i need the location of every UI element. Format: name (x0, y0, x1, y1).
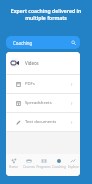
other: Explore (70, 158, 76, 164)
other: Home (11, 158, 17, 164)
button[interactable]: Coaching (51, 154, 66, 176)
button[interactable]: Programs (36, 154, 51, 176)
staticText: Coaching (13, 40, 33, 46)
staticText: Coaching (52, 165, 66, 169)
button[interactable]: PDFs (6, 75, 80, 93)
button[interactable]: Explore (66, 154, 80, 176)
other: Search (71, 40, 76, 45)
staticText: Videos (25, 60, 39, 66)
other: Programs (41, 158, 47, 164)
staticText: PDFs (25, 81, 35, 87)
button[interactable]: Coaching (6, 36, 80, 49)
staticText: Text documents (25, 119, 57, 125)
button[interactable]: Home (6, 154, 21, 176)
staticText: Explore (68, 165, 79, 169)
staticText: Expert coaching delivered in multiple fo… (7, 8, 85, 22)
button[interactable]: Videos (6, 52, 80, 74)
button[interactable]: Text documents (6, 113, 80, 131)
staticText: Courses (23, 165, 35, 169)
staticText: Home (9, 165, 18, 169)
staticText: Spreadsheets (25, 100, 52, 106)
other: Courses (26, 158, 32, 164)
other: Coaching (56, 158, 62, 164)
button[interactable]: Courses (21, 154, 36, 176)
button[interactable]: Spreadsheets (6, 94, 80, 112)
staticText: Programs (36, 165, 51, 169)
